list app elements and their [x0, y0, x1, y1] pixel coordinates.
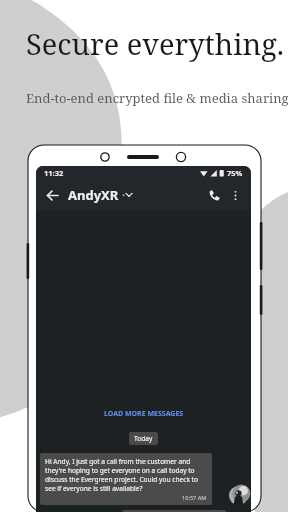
button[interactable]: AndyXR [68, 186, 132, 204]
staticText: Hi Andy, I just got a call from the cust… [45, 457, 207, 493]
button[interactable]: Back [43, 186, 61, 204]
staticText: Secure everything. [26, 24, 285, 63]
staticText: 11:32 [44, 168, 64, 178]
button[interactable]: Call [204, 185, 224, 205]
button[interactable]: More options [226, 186, 244, 204]
button[interactable]: They want to shoot for 2:00pm. [122, 510, 226, 512]
staticText: End-to-end encrypted file & media sharin… [26, 89, 288, 107]
staticText: 75% [227, 168, 243, 178]
staticText: 10:57 AM [182, 494, 207, 502]
staticText: Today [134, 434, 153, 443]
button[interactable]: Hi Andy, I just got a call from the cust… [40, 453, 212, 505]
button[interactable]: LOAD MORE MESSAGES [36, 407, 251, 421]
staticText: LOAD MORE MESSAGES [104, 409, 184, 419]
staticText: AndyXR [68, 186, 119, 204]
